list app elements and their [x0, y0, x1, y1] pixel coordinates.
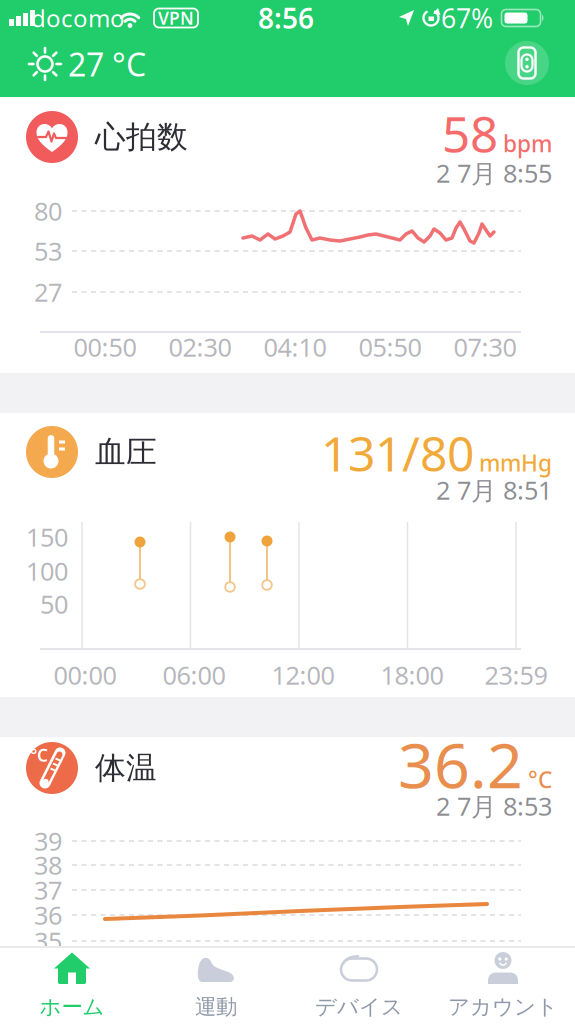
staticText: 2 7月 8:55	[436, 156, 552, 190]
staticText: 2 7月 8:51	[436, 473, 552, 507]
staticText: 27	[34, 275, 62, 309]
staticText: 27 °C	[68, 43, 146, 85]
staticText: 00:50	[73, 330, 136, 364]
staticText: 血圧	[95, 433, 157, 471]
staticText: アカウント	[448, 994, 558, 1020]
staticText: 心拍数	[95, 118, 188, 156]
button[interactable]: アカウント	[433, 946, 573, 1024]
staticText: 07:30	[453, 330, 516, 364]
button[interactable]: Device	[505, 41, 549, 85]
staticText: 12:00	[271, 658, 334, 692]
button[interactable]: °C	[0, 737, 575, 946]
staticText: °C	[30, 743, 48, 766]
staticText: °C	[528, 764, 552, 795]
staticText: VPN	[158, 6, 194, 29]
staticText: 23:59	[484, 658, 547, 692]
button[interactable]: デバイス	[289, 946, 429, 1024]
staticText: 36	[34, 898, 62, 932]
staticText: 35	[34, 924, 62, 958]
staticText: 67%	[441, 0, 493, 36]
staticText: 02:30	[168, 330, 231, 364]
staticText: mmHg	[479, 448, 552, 478]
button[interactable]: 血圧	[0, 413, 575, 697]
button[interactable]: 運動	[146, 946, 286, 1024]
staticText: 38	[34, 848, 62, 882]
staticText: デバイス	[315, 994, 403, 1020]
staticText: 06:00	[162, 658, 225, 692]
staticText: 00:00	[53, 658, 116, 692]
staticText: 80	[34, 194, 62, 228]
staticText: 39	[34, 824, 62, 858]
staticText: 131/80	[321, 421, 474, 485]
button[interactable]: 心拍数	[0, 97, 575, 373]
staticText: 05:50	[358, 330, 421, 364]
staticText: 53	[34, 234, 62, 268]
staticText: 150	[26, 520, 68, 554]
staticText: 体温	[95, 749, 157, 787]
staticText: docomo	[31, 2, 125, 34]
staticText: 37	[34, 873, 62, 907]
button[interactable]: ホーム	[2, 946, 142, 1024]
staticText: 2 7月 8:53	[436, 789, 552, 823]
staticText: 58	[442, 100, 498, 166]
staticText: 04:10	[263, 330, 326, 364]
staticText: ホーム	[39, 994, 104, 1020]
staticText: 50	[40, 587, 68, 621]
staticText: 8:56	[258, 0, 314, 37]
staticText: 運動	[195, 994, 237, 1020]
staticText: 100	[26, 554, 68, 588]
staticText: bpm	[503, 128, 552, 158]
staticText: 36.2	[398, 722, 523, 806]
staticText: 18:00	[380, 658, 443, 692]
